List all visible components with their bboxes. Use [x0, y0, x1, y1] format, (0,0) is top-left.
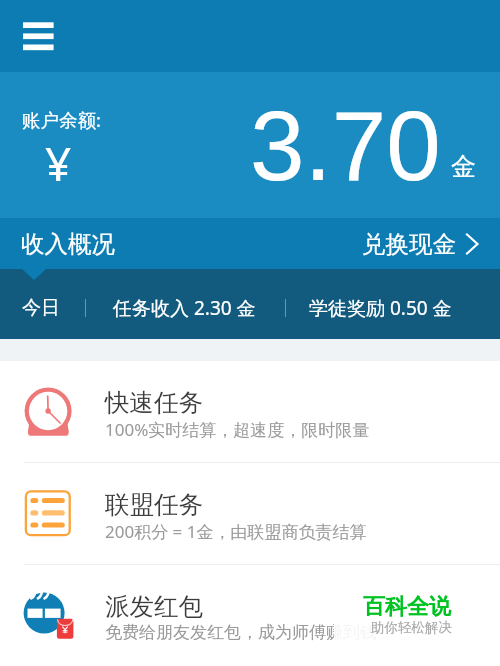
staticText: 100%实时结算，超速度，限时限量 [105, 418, 370, 441]
staticText: 联盟任务 [105, 489, 203, 520]
staticText: 学徒奖励 0.50 金 [309, 295, 452, 321]
button[interactable]: 收入概况 [0, 218, 500, 269]
staticText: 兑换现金 [362, 229, 456, 259]
staticText: 快速任务 [105, 387, 203, 418]
staticText: 百科全说 [363, 593, 451, 621]
staticText: 200积分 = 1金，由联盟商负责结算 [105, 520, 367, 543]
staticText: 今日 [22, 296, 60, 320]
button[interactable]: 派发红包 [0, 565, 500, 666]
staticText: 免费给朋友发红包，成为师傅赚到钱 [105, 622, 377, 643]
button[interactable]: 快速任务 [0, 361, 500, 462]
staticText: 收入概况 [21, 229, 115, 259]
button[interactable]: Menu [13, 12, 63, 62]
staticText: 助你轻松解决 [371, 619, 452, 636]
staticText: 派发红包 [105, 591, 203, 622]
staticText: 3.70 [250, 91, 441, 200]
staticText: 账户余额: [22, 107, 101, 132]
button[interactable]: 联盟任务 [0, 463, 500, 564]
staticText: ¥ [45, 132, 72, 195]
staticText: 任务收入 2.30 金 [113, 295, 256, 321]
staticText: 金 [451, 151, 476, 182]
